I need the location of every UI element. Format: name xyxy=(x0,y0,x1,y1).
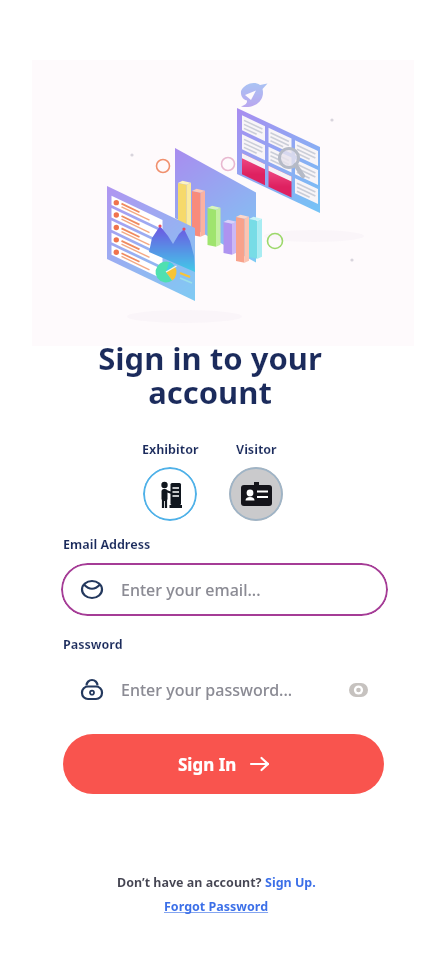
button[interactable] xyxy=(338,670,378,710)
staticText: Sign In xyxy=(178,753,237,776)
button[interactable]: Sign In xyxy=(63,734,384,794)
staticText: Enter your password... xyxy=(121,679,293,701)
button[interactable]: Sign Up. xyxy=(265,874,316,891)
button[interactable]: Enter your email... xyxy=(61,563,388,616)
staticText: Forgot Password xyxy=(164,898,269,915)
staticText: Don’t have an account? xyxy=(117,874,265,891)
staticText: Enter your email... xyxy=(121,579,261,601)
button[interactable] xyxy=(143,467,197,521)
button[interactable]: Enter your password... xyxy=(61,663,388,716)
staticText: Exhibitor xyxy=(142,441,199,458)
staticText: Password xyxy=(63,636,123,653)
staticText: Email Address xyxy=(63,536,151,553)
button[interactable] xyxy=(229,467,283,521)
staticText: Visitor xyxy=(236,441,277,458)
button[interactable]: Forgot Password xyxy=(164,898,269,915)
staticText: Sign Up. xyxy=(265,874,316,891)
staticText: Sign in to your account xyxy=(0,337,430,413)
